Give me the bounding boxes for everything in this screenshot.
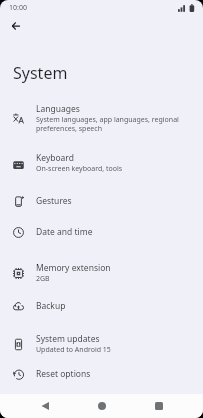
button[interactable]: Reset options [0, 368, 203, 380]
button[interactable]: Memory extension [0, 262, 203, 284]
staticText: On-screen keyboard, tools [36, 164, 123, 174]
button[interactable] [33, 394, 57, 418]
staticText: Updated to Android 15 [36, 345, 111, 355]
button[interactable]: Date and time [0, 226, 203, 238]
staticText: Languages [36, 103, 80, 115]
button[interactable] [90, 394, 114, 418]
staticText: 2GB [36, 274, 50, 284]
staticText: Memory extension [36, 262, 111, 274]
staticText: 10:00 [9, 3, 27, 13]
staticText: Reset options [36, 368, 91, 380]
button[interactable]: Keyboard [0, 152, 203, 174]
staticText: Keyboard [36, 152, 74, 164]
button[interactable]: System updates [0, 333, 203, 355]
staticText: Date and time [36, 226, 93, 238]
button[interactable] [6, 16, 25, 35]
staticText: System [13, 62, 68, 84]
button[interactable]: Backup [0, 300, 203, 312]
button[interactable]: Languages [0, 103, 203, 133]
staticText: Backup [36, 300, 66, 312]
button[interactable] [147, 394, 171, 418]
staticText: System languages, app languages, regiona… [36, 115, 179, 133]
button[interactable]: Gestures [0, 195, 203, 207]
staticText: Gestures [36, 195, 72, 207]
staticText: System updates [36, 333, 100, 345]
